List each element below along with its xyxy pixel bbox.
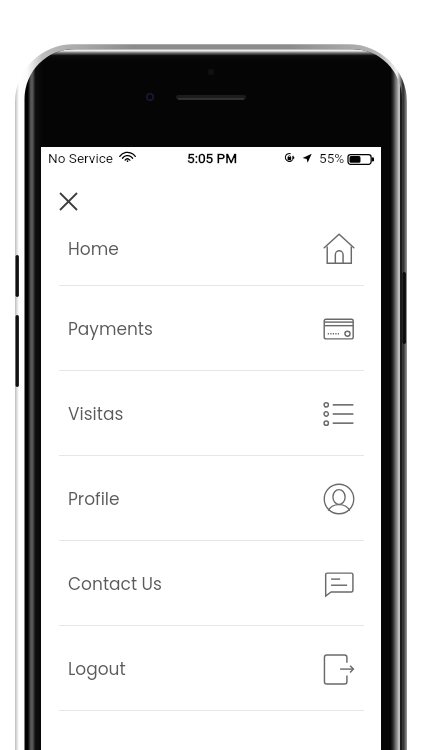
button[interactable]: Close (52, 185, 84, 217)
staticText: Visitas (68, 402, 124, 426)
button[interactable]: Visitas (41, 371, 381, 456)
staticText: 55% (319, 150, 345, 166)
staticText: No Service (48, 150, 114, 166)
staticText: Contact Us (68, 572, 162, 596)
staticText: Payments (68, 317, 153, 341)
staticText: Profile (68, 487, 120, 511)
staticText: Logout (68, 657, 126, 681)
button[interactable]: Home (41, 201, 381, 286)
staticText: Home (68, 237, 119, 261)
staticText: 5:05 PM (187, 150, 238, 166)
button[interactable]: Contact Us (41, 541, 381, 626)
button[interactable]: Profile (41, 456, 381, 541)
button[interactable]: Logout (41, 626, 381, 711)
button[interactable]: Payments (41, 286, 381, 371)
